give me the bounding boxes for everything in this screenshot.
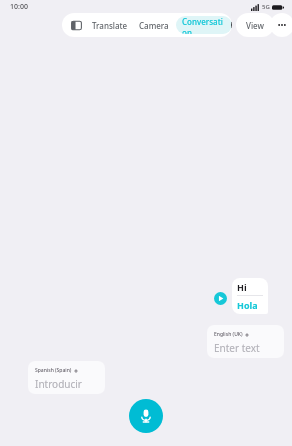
button[interactable]: Hi [232, 278, 268, 314]
button[interactable]: Toggle panel [68, 17, 84, 33]
button[interactable]: Conversation [176, 16, 232, 34]
staticText: English (UK) [214, 331, 243, 338]
staticText: Conversation [182, 16, 226, 34]
button[interactable]: Camera [135, 17, 173, 34]
button[interactable]: More options [270, 13, 292, 37]
staticText: View [246, 20, 264, 31]
button[interactable]: Translate [88, 17, 132, 34]
staticText: Spanish (Spain) [35, 367, 72, 374]
button[interactable]: Play translation [214, 292, 227, 305]
staticText: Enter text [214, 341, 260, 355]
staticText: 5G [262, 3, 270, 11]
staticText: 10:00 [10, 2, 28, 12]
button[interactable]: English (UK) [207, 325, 284, 358]
button[interactable]: View [236, 13, 274, 37]
button[interactable]: Microphone [129, 399, 163, 433]
staticText: Introducir texto [35, 377, 105, 394]
staticText: Hola [237, 299, 258, 311]
staticText: Translate [92, 20, 128, 31]
button[interactable]: Spanish (Spain) [28, 361, 105, 394]
staticText: Hi [237, 281, 247, 293]
staticText: Camera [139, 20, 169, 31]
